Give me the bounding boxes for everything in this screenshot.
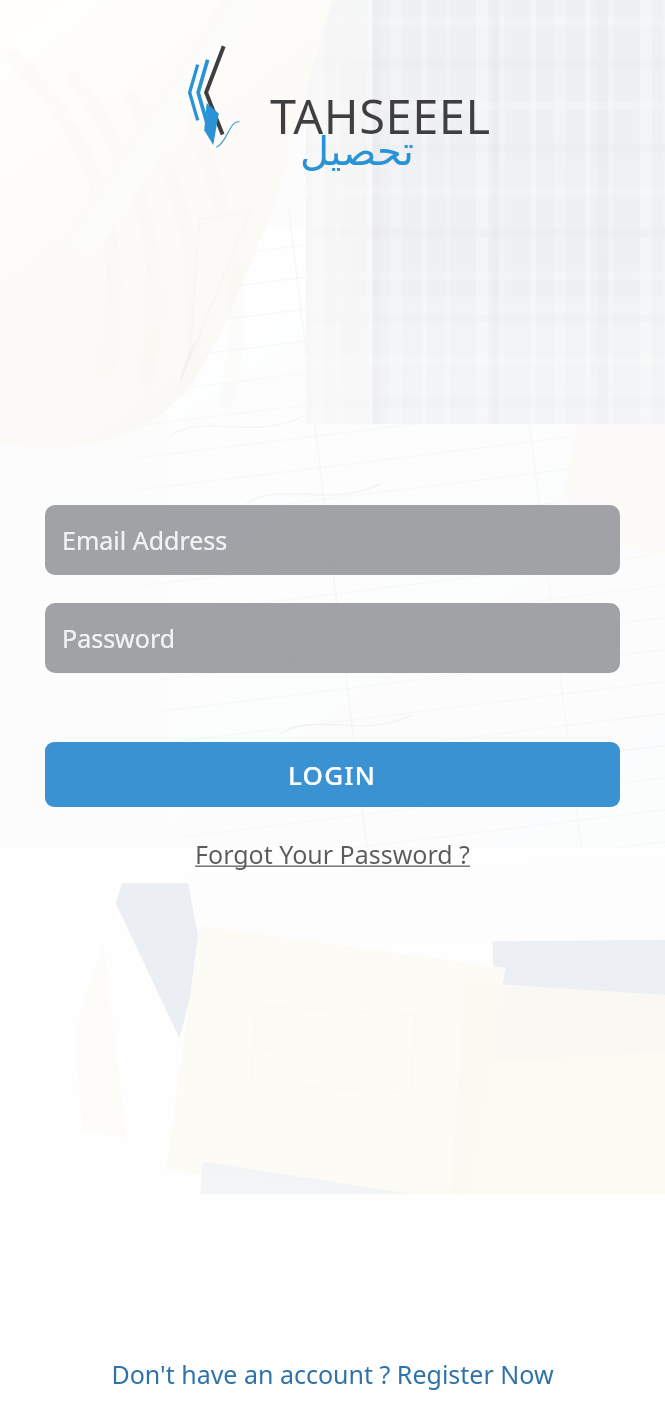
staticText: LOGIN (288, 757, 377, 792)
staticText: TAHSEEEL (270, 84, 491, 148)
staticText: Email Address (62, 523, 228, 557)
button[interactable]: LOGIN (45, 742, 620, 807)
staticText: Forgot Your Password ? (195, 837, 470, 871)
staticText: تحصيل (300, 128, 415, 175)
button[interactable]: Don't have an account ? Register Now (99, 1349, 566, 1399)
button[interactable]: Forgot Your Password ? (185, 831, 480, 877)
button[interactable]: Password (45, 603, 620, 673)
staticText: Password (62, 621, 176, 655)
button[interactable]: Email Address (45, 505, 620, 575)
staticText: Don't have an account ? Register Now (111, 1357, 554, 1391)
